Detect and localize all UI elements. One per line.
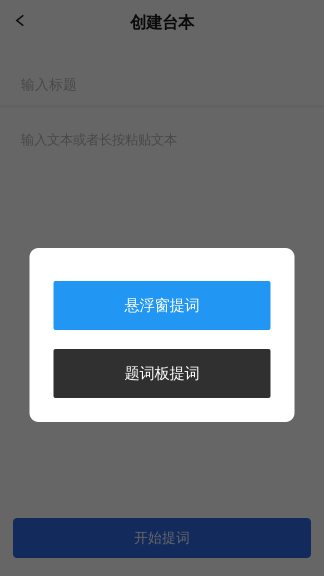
staticText: 开始提词 [134, 529, 190, 547]
button[interactable]: 悬浮窗提词 [53, 281, 270, 330]
staticText: 输入文本或者长按粘贴文本 [21, 131, 177, 148]
staticText: 题词板提词 [124, 364, 199, 383]
staticText: 悬浮窗提词 [124, 296, 199, 315]
staticText: 输入标题 [21, 76, 77, 93]
button[interactable]: 开始提词 [13, 518, 311, 558]
button[interactable]: 题词板提词 [53, 349, 270, 398]
staticText: 创建台本 [130, 12, 194, 33]
button[interactable]: Back [0, 2, 38, 42]
